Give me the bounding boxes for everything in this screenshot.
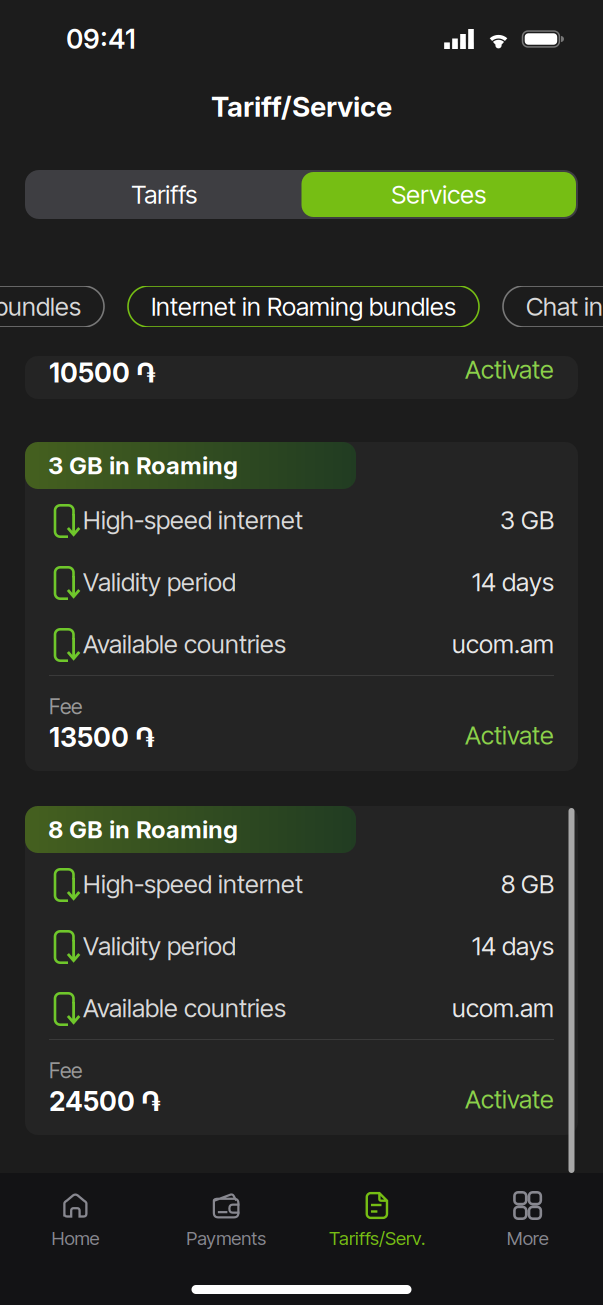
staticText: 8 GB in Roaming <box>48 815 238 844</box>
staticText: 8 GB <box>501 869 554 899</box>
staticText: Internet in Roaming bundles <box>0 291 81 322</box>
staticText: 13500 ֏ <box>49 721 155 754</box>
button[interactable]: Tariffs/Serv. <box>301 1173 452 1258</box>
staticText: High-speed internet <box>83 869 303 899</box>
staticText: 3 GB <box>500 505 554 535</box>
staticText: Activate <box>465 354 554 385</box>
staticText: Home <box>51 1227 99 1250</box>
staticText: 24500 ֏ <box>49 1085 161 1118</box>
staticText: High-speed internet <box>83 505 303 535</box>
button[interactable]: Payments <box>151 1173 302 1258</box>
button[interactable]: Chat in Roaming bundles <box>503 286 603 327</box>
staticText: 14 days <box>472 567 554 597</box>
staticText: ucom.am <box>452 993 554 1023</box>
staticText: Services <box>391 179 486 210</box>
staticText: Fee <box>49 693 82 719</box>
staticText: 3 GB in Roaming <box>48 451 238 480</box>
button[interactable]: Activate <box>465 1081 554 1118</box>
staticText: 14 days <box>472 931 554 961</box>
staticText: Tariffs/Serv. <box>329 1227 425 1250</box>
button[interactable]: Tariffs <box>27 172 301 217</box>
staticText: Internet in Roaming bundles <box>151 291 456 322</box>
button[interactable]: Internet in Roaming bundles <box>128 286 479 327</box>
staticText: Validity period <box>83 567 236 597</box>
button[interactable]: Internet in Roaming bundles <box>0 286 104 327</box>
staticText: Payments <box>186 1227 266 1250</box>
staticText: Available countries <box>83 993 286 1023</box>
staticText: Chat in Roaming bundles <box>526 291 603 322</box>
staticText: 09:41 <box>66 23 136 55</box>
button[interactable]: Activate <box>465 350 554 389</box>
staticText: 10500 ֏ <box>49 357 156 389</box>
button[interactable]: Activate <box>465 717 554 754</box>
staticText: Validity period <box>83 931 236 961</box>
button[interactable]: Services <box>301 172 576 217</box>
staticText: Tariff/Service <box>211 90 392 123</box>
staticText: Tariffs <box>131 179 197 210</box>
button[interactable]: Home <box>0 1173 151 1258</box>
staticText: Activate <box>465 720 554 751</box>
staticText: ucom.am <box>452 629 554 659</box>
staticText: Fee <box>49 1057 82 1083</box>
staticText: More <box>507 1227 549 1250</box>
staticText: Available countries <box>83 629 286 659</box>
button[interactable]: More <box>452 1173 603 1258</box>
staticText: Activate <box>465 1084 554 1115</box>
